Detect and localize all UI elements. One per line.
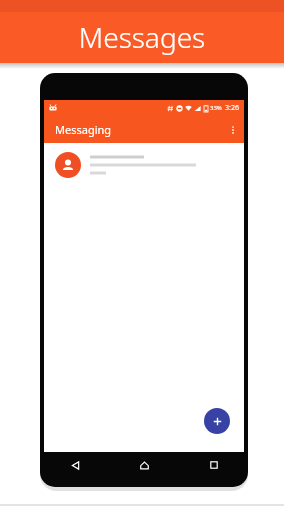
staticText: 33%: [210, 104, 222, 112]
button[interactable]: Home: [110, 452, 179, 478]
button[interactable]: New message: [204, 408, 230, 434]
button[interactable]: [44, 143, 244, 187]
button[interactable]: Back: [40, 452, 110, 478]
staticText: Messaging: [55, 122, 112, 137]
button[interactable]: More options: [222, 116, 244, 143]
staticText: Messages: [0, 18, 284, 56]
button[interactable]: Recent apps: [179, 452, 248, 478]
staticText: 3:26: [225, 103, 239, 113]
